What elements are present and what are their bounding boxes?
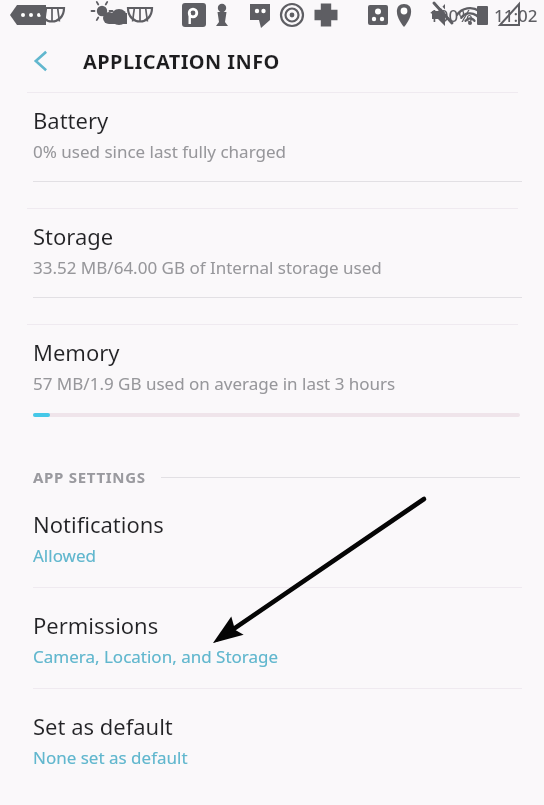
button[interactable]: Notifications [0, 509, 544, 587]
staticText: Notifications [33, 509, 164, 539]
staticText: Camera, Location, and Storage [33, 645, 279, 668]
staticText: Permissions [33, 610, 159, 640]
staticText: 57 MB/1.9 GB used on average in last 3 h… [33, 372, 396, 395]
staticText: 100% [429, 4, 473, 27]
button[interactable]: Permissions [0, 610, 544, 688]
staticText: Battery [33, 105, 109, 135]
button[interactable]: Storage [0, 209, 544, 297]
staticText: APPLICATION INFO [83, 48, 280, 75]
staticText: 33.52 MB/64.00 GB of Internal storage us… [33, 256, 382, 279]
staticText: None set as default [33, 746, 188, 769]
button[interactable]: Battery [0, 93, 544, 181]
staticText: 11:02 [494, 4, 538, 27]
button[interactable]: Navigate up [18, 38, 64, 84]
staticText: Memory [33, 337, 120, 367]
staticText: 0% used since last fully charged [33, 140, 286, 163]
button[interactable]: Set as default [0, 711, 544, 785]
staticText: Storage [33, 221, 114, 251]
staticText: APP SETTINGS [33, 467, 146, 487]
staticText: Allowed [33, 544, 96, 567]
staticText: Set as default [33, 711, 173, 741]
button[interactable]: Memory [0, 325, 544, 413]
